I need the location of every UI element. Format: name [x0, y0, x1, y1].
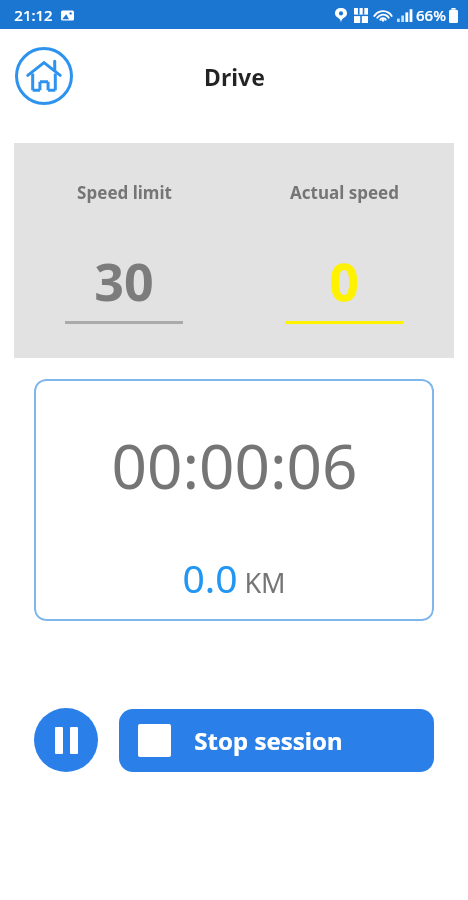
staticText: KM	[244, 564, 286, 601]
staticText: 21:12	[14, 5, 53, 25]
staticText: Actual speed	[290, 181, 399, 204]
staticText: 66%	[416, 5, 446, 25]
staticText: Stop session	[194, 724, 343, 757]
staticText: 30	[94, 245, 154, 316]
button[interactable]: Home	[10, 42, 78, 110]
staticText: Drive	[204, 61, 265, 92]
staticText: 00:00:06	[111, 423, 358, 507]
button[interactable]: Pause	[34, 708, 98, 772]
staticText: Speed limit	[77, 181, 172, 204]
staticText: 0.0	[182, 551, 238, 604]
staticText: 0	[329, 245, 359, 316]
button[interactable]: Stop session	[119, 709, 434, 772]
